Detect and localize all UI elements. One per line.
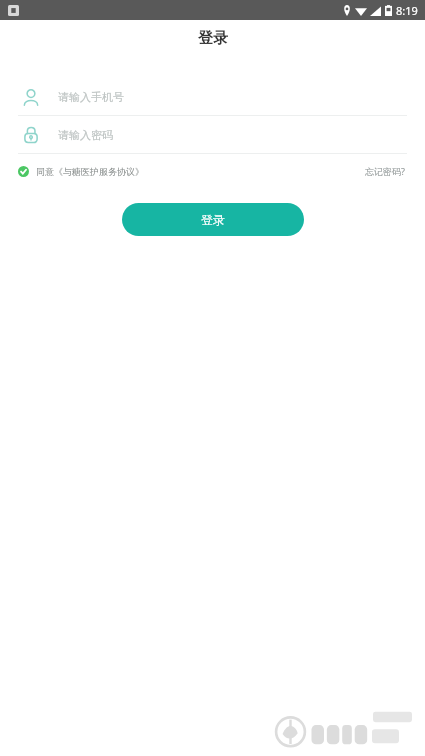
other: Phone number (22, 88, 40, 106)
staticText: 8:19 (396, 3, 418, 18)
staticText: 登录 (201, 212, 225, 227)
button[interactable]: 登录 (122, 203, 304, 236)
staticText: 请输入手机号 (58, 90, 124, 104)
staticText: 忘记密码? (365, 165, 405, 177)
staticText: 请输入密码 (58, 128, 113, 142)
button[interactable]: Phone number (0, 78, 425, 116)
other: Password (22, 126, 40, 144)
button[interactable]: 忘记密码? (363, 161, 407, 181)
button[interactable]: 同意《与糖医护服务协议》 (18, 164, 144, 179)
button[interactable]: Password (0, 116, 425, 154)
staticText: 同意《与糖医护服务协议》 (36, 166, 144, 177)
staticText: 登录 (198, 29, 228, 48)
